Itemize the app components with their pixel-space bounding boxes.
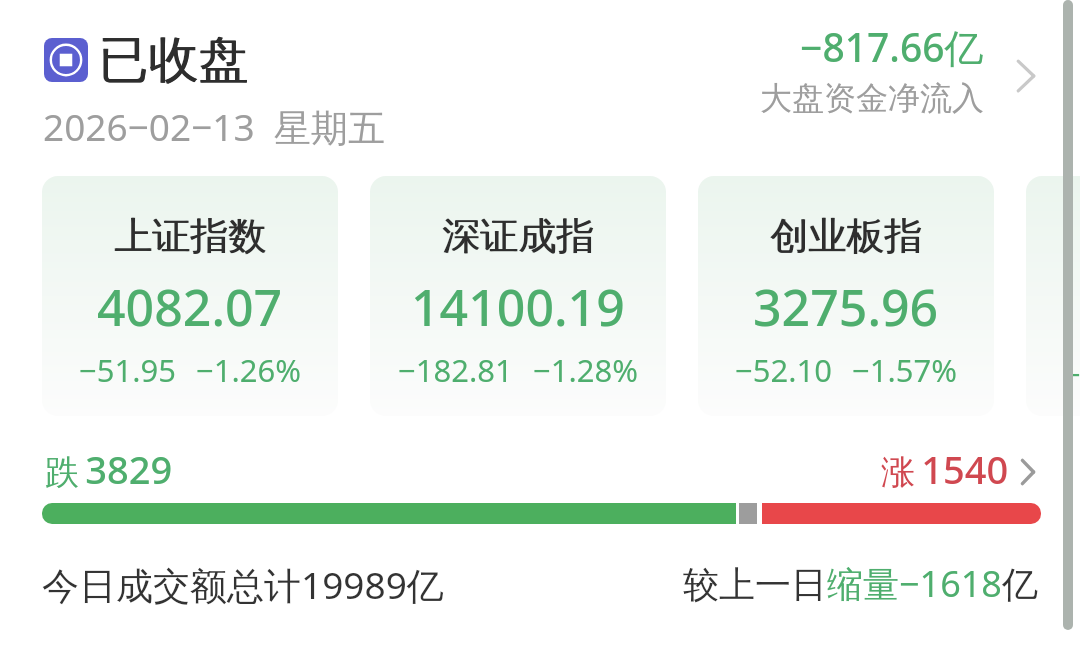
button[interactable]: Capital flow details: [1015, 58, 1037, 94]
button[interactable]: 涨 1540: [881, 443, 1009, 495]
staticText: 今日成交额总计19989亿: [42, 559, 444, 610]
staticText: −1.57%: [852, 349, 957, 391]
staticText: −60.20: [1063, 353, 1080, 395]
staticText: −1.28%: [533, 349, 638, 391]
button[interactable]: −817.66亿: [694, 20, 984, 118]
staticText: 4082.07: [97, 273, 283, 341]
button[interactable]: 跌 3829: [45, 443, 173, 495]
staticText: −52.10: [735, 349, 832, 391]
button[interactable]: 创业板指: [698, 176, 994, 416]
button[interactable]: 上证指数: [42, 176, 338, 416]
staticText: 深证成指: [442, 212, 594, 260]
staticText: 14100.19: [411, 273, 625, 341]
staticText: 较上一日缩量−1618亿: [683, 559, 1038, 608]
staticText: 创业板指: [770, 212, 922, 260]
staticText: −182.81: [398, 349, 513, 391]
staticText: 上证指数: [115, 212, 267, 260]
staticText: 跌 3829: [45, 443, 173, 495]
staticText: 深证成指: [443, 212, 595, 260]
staticText: 涨 1540: [881, 443, 1009, 495]
staticText: 大盘资金净流入: [760, 78, 984, 118]
staticText: −51.95: [79, 349, 176, 391]
button[interactable]: 深证成指: [370, 176, 666, 416]
staticText: 3275.96: [753, 273, 939, 341]
staticText: 创业板指: [771, 212, 923, 260]
staticText: 已收盘: [99, 29, 249, 92]
staticText: 2026−02−13 星期五: [43, 101, 385, 152]
staticText: 上证指数: [114, 212, 266, 260]
button[interactable]: Gainers and losers: [1019, 457, 1037, 487]
staticText: −817.66亿: [800, 20, 984, 73]
button[interactable]: 沪深300: [1026, 176, 1080, 416]
button[interactable]: Market closed: [44, 38, 88, 82]
staticText: 已收盘: [98, 29, 248, 92]
staticText: 已收盘: [99, 29, 249, 92]
staticText: −1.26%: [196, 349, 301, 391]
